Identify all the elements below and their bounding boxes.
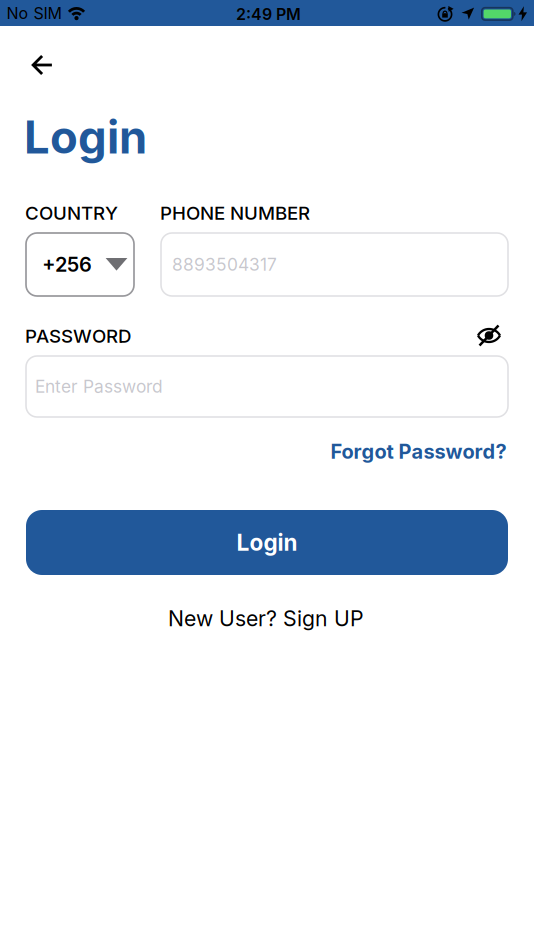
staticText: 8893504317	[172, 254, 277, 275]
staticText: New User? Sign UP	[168, 606, 364, 631]
button[interactable]: Country code +256	[26, 233, 134, 296]
staticText: PHONE NUMBER	[160, 202, 310, 224]
staticText: Enter Password	[35, 376, 163, 397]
staticText: No SIM	[6, 4, 61, 23]
button[interactable]: Phone number	[161, 233, 508, 296]
staticText: +256	[42, 253, 92, 276]
staticText: Login	[236, 529, 297, 556]
button[interactable]: Login	[26, 510, 508, 575]
staticText: PASSWORD	[25, 325, 131, 347]
staticText: 2:49 PM	[236, 5, 301, 24]
button[interactable]: Show password	[471, 319, 507, 351]
staticText: COUNTRY	[25, 202, 118, 224]
button[interactable]: Forgot Password?	[330, 440, 506, 463]
button[interactable]: Back	[20, 46, 64, 84]
staticText: Login	[24, 110, 147, 164]
staticText: Forgot Password?	[330, 440, 506, 463]
button[interactable]: Enter Password	[26, 356, 508, 417]
button[interactable]: New User? Sign UP	[168, 606, 364, 631]
